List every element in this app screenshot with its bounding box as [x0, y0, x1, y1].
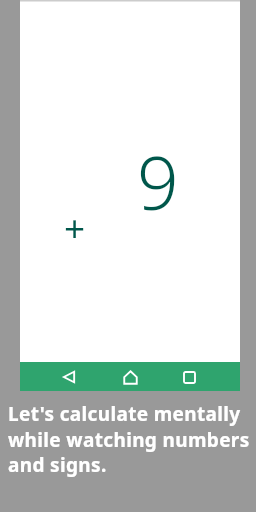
staticText: +: [64, 202, 86, 252]
staticText: Let's calculate mentally while watching …: [8, 401, 256, 478]
button[interactable]: Recents: [175, 363, 203, 391]
button[interactable]: Home: [116, 363, 144, 391]
staticText: 9: [137, 132, 179, 231]
button[interactable]: Back: [55, 363, 83, 391]
button[interactable]: Flash card area: [20, 2, 240, 391]
